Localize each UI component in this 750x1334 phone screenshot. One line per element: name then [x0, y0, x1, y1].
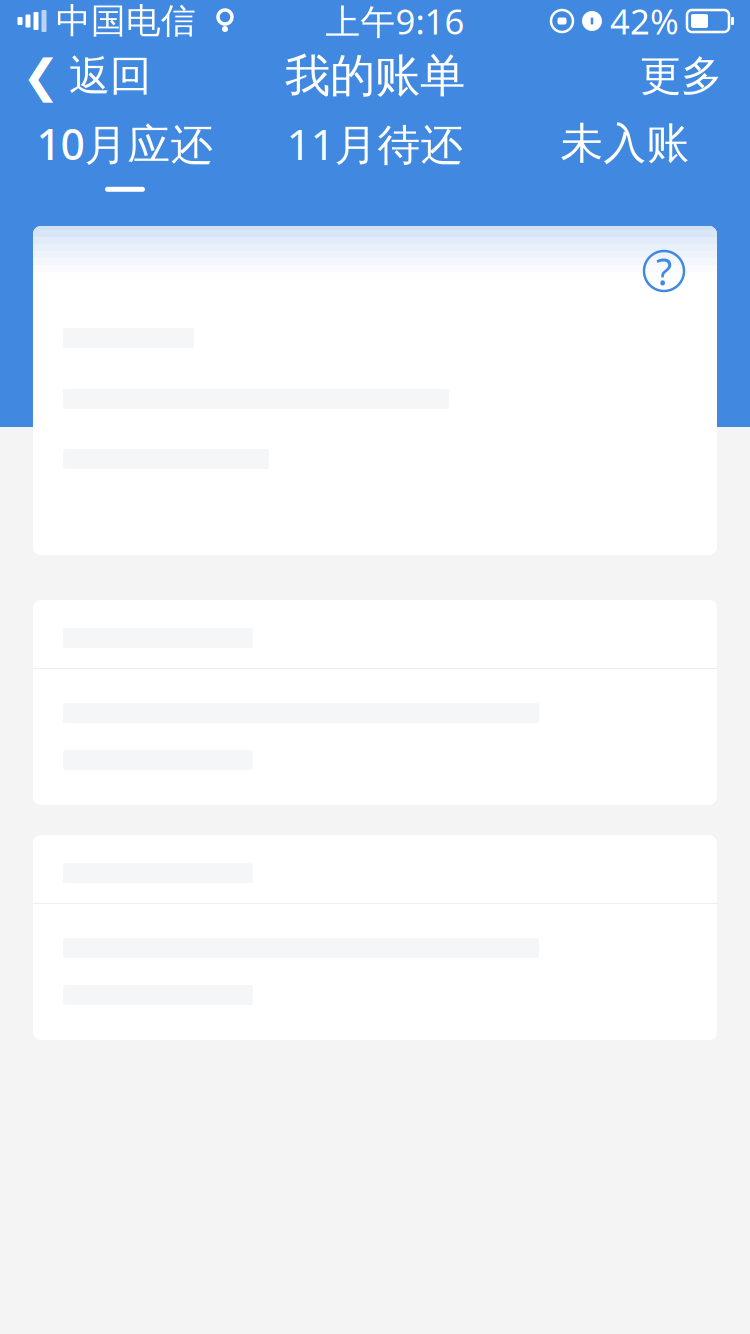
staticText: 我的账单 — [285, 48, 465, 104]
staticText: ❮ — [22, 50, 60, 102]
button[interactable]: 帮助 — [635, 242, 693, 300]
staticText: 11月待还 — [286, 115, 463, 172]
staticText: 更多 — [640, 51, 722, 101]
staticText: 10月应还 — [36, 115, 213, 172]
button[interactable]: 11月待还 — [250, 110, 500, 204]
staticText: ? — [656, 246, 672, 296]
button[interactable]: 更多 — [612, 42, 750, 110]
staticText: 返回 — [69, 51, 151, 101]
staticText: 42% — [610, 0, 679, 44]
button[interactable]: 10月应还 — [0, 110, 250, 204]
staticText: 上午9:16 — [325, 0, 464, 44]
button[interactable]: ❮ — [0, 42, 169, 110]
button[interactable]: 未入账 — [500, 110, 750, 204]
button[interactable] — [33, 600, 717, 805]
button[interactable] — [33, 835, 717, 1040]
staticText: 未入账 — [560, 117, 689, 170]
staticText: 中国电信 — [56, 0, 196, 42]
